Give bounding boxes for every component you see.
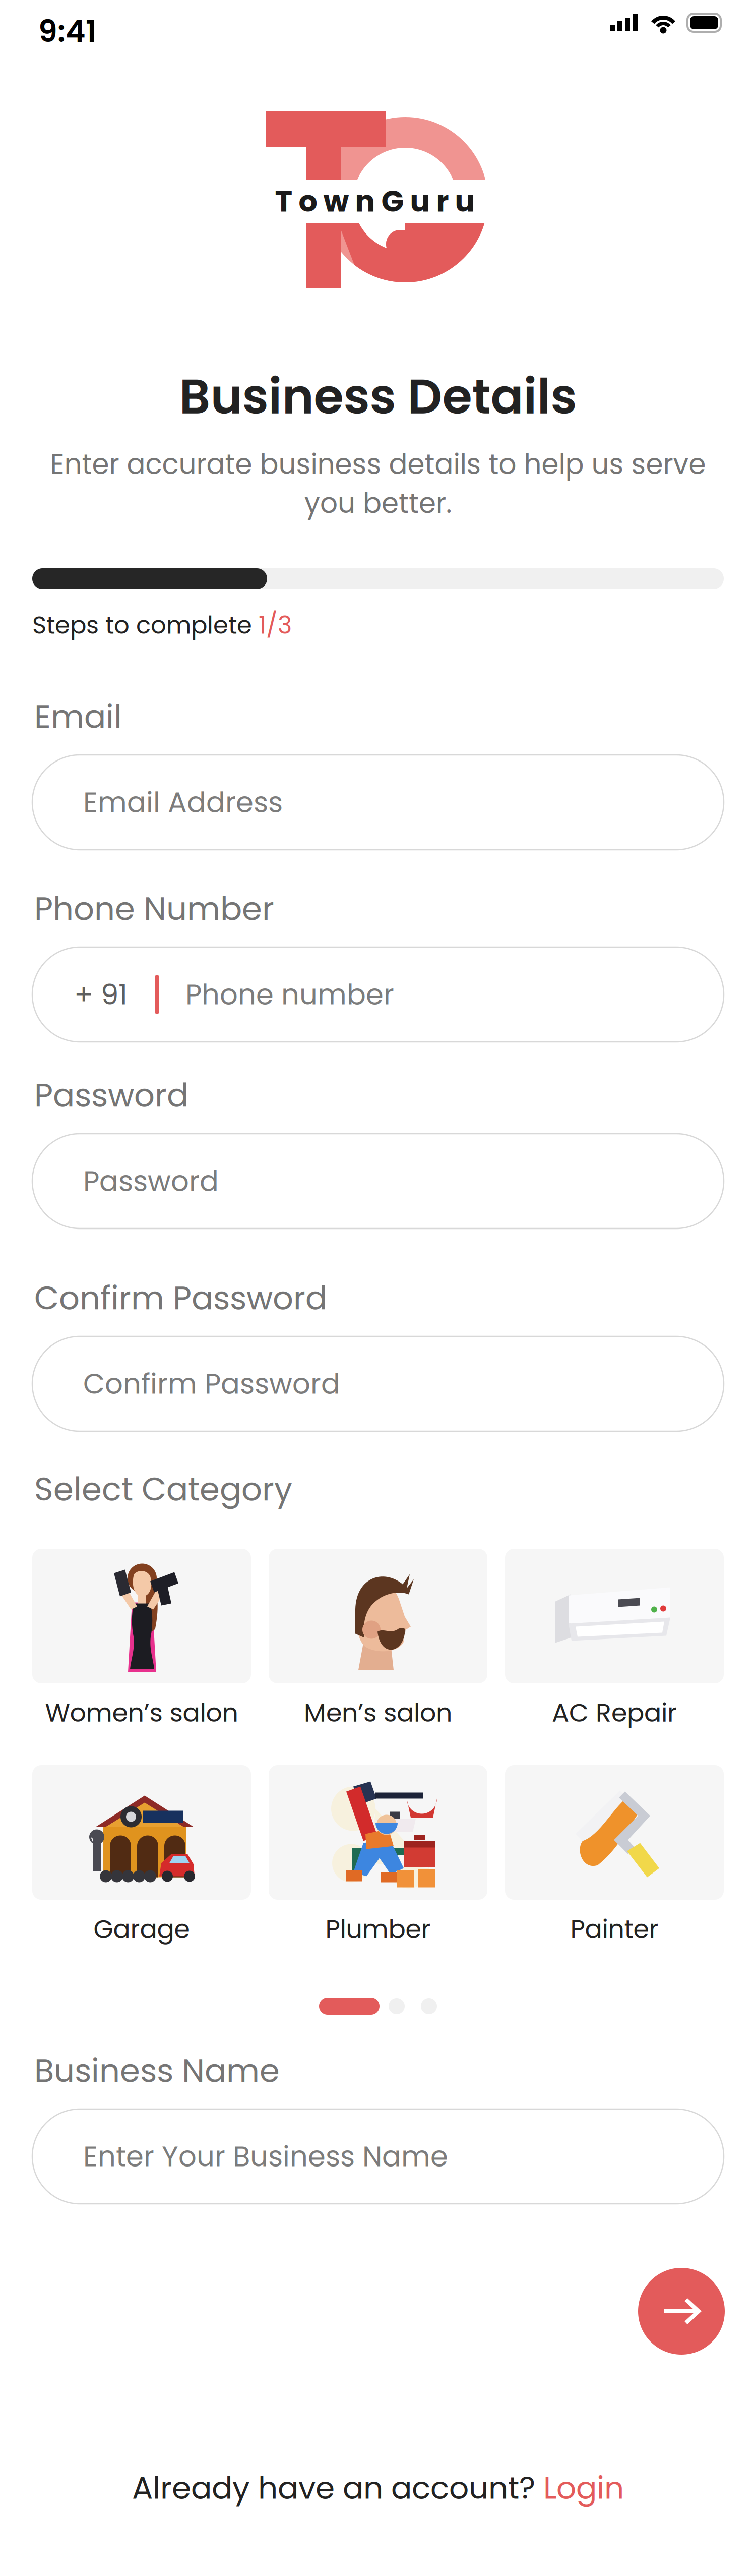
- staticText: Email Address: [83, 783, 283, 822]
- button[interactable]: + 91: [32, 947, 724, 1042]
- staticText: Already have an account?: [132, 2466, 543, 2509]
- staticText: T o w n G u r u: [275, 180, 475, 222]
- staticText: Select Category: [34, 1467, 292, 1512]
- button[interactable]: Enter Your Business Name: [32, 2109, 724, 2204]
- button[interactable]: Password: [32, 1134, 724, 1228]
- staticText: Phone Number: [34, 886, 274, 931]
- staticText: Steps to complete: [32, 608, 259, 642]
- staticText: AC Repair: [552, 1695, 677, 1730]
- staticText: + 91: [74, 975, 128, 1014]
- staticText: you better.: [304, 484, 452, 522]
- staticText: Enter Your Business Name: [83, 2137, 448, 2176]
- staticText: Phone number: [185, 975, 394, 1014]
- staticText: Plumber: [325, 1911, 431, 1947]
- staticText: Women’s salon: [45, 1695, 238, 1730]
- button[interactable]: Painter: [505, 1765, 724, 1942]
- staticText: Business Name: [34, 2048, 280, 2093]
- staticText: Enter accurate business details to help …: [50, 445, 706, 483]
- button[interactable]: AC Repair: [505, 1549, 724, 1726]
- staticText: Business Details: [179, 363, 577, 430]
- staticText: Login: [543, 2466, 624, 2509]
- staticText: Confirm Password: [83, 1364, 340, 1404]
- staticText: Password: [34, 1073, 188, 1118]
- button[interactable]: Continue: [638, 2268, 725, 2355]
- staticText: Password: [83, 1161, 219, 1201]
- button[interactable]: Garage: [32, 1765, 251, 1942]
- button[interactable]: Email Address: [32, 755, 724, 850]
- staticText: Men’s salon: [304, 1695, 452, 1730]
- staticText: Garage: [93, 1911, 190, 1947]
- staticText: 1/3: [259, 608, 292, 642]
- staticText: Confirm Password: [34, 1275, 327, 1321]
- staticText: 9:41: [38, 10, 97, 52]
- button[interactable]: Login: [543, 2466, 624, 2509]
- button[interactable]: Men’s salon: [269, 1549, 487, 1726]
- button[interactable]: Plumber: [269, 1765, 487, 1942]
- button[interactable]: Confirm Password: [32, 1336, 724, 1431]
- staticText: Email: [34, 694, 122, 739]
- button[interactable]: Women’s salon: [32, 1549, 251, 1726]
- staticText: Painter: [570, 1911, 658, 1947]
